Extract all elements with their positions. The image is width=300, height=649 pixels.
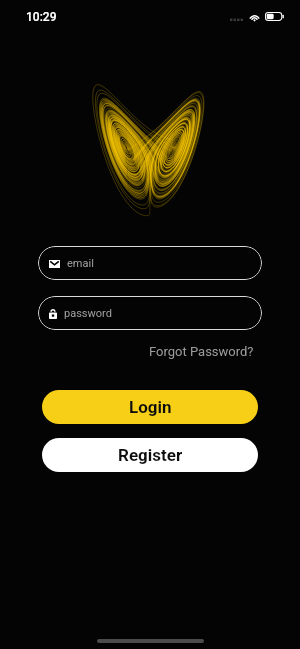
button[interactable]: Password [38,296,262,330]
staticText: Register [118,445,183,465]
other: Logo [94,87,206,219]
button[interactable]: Register [42,438,258,472]
button[interactable]: Login [42,390,258,424]
staticText: password [64,307,112,320]
other: Password [49,309,57,319]
staticText: email [67,257,94,270]
button[interactable]: Email [38,246,262,280]
staticText: Forgot Password? [149,344,254,359]
button[interactable]: Forgot Password? [147,341,256,362]
staticText: 10:29 [26,10,57,24]
other: Email [49,260,60,268]
staticText: Login [129,397,172,417]
